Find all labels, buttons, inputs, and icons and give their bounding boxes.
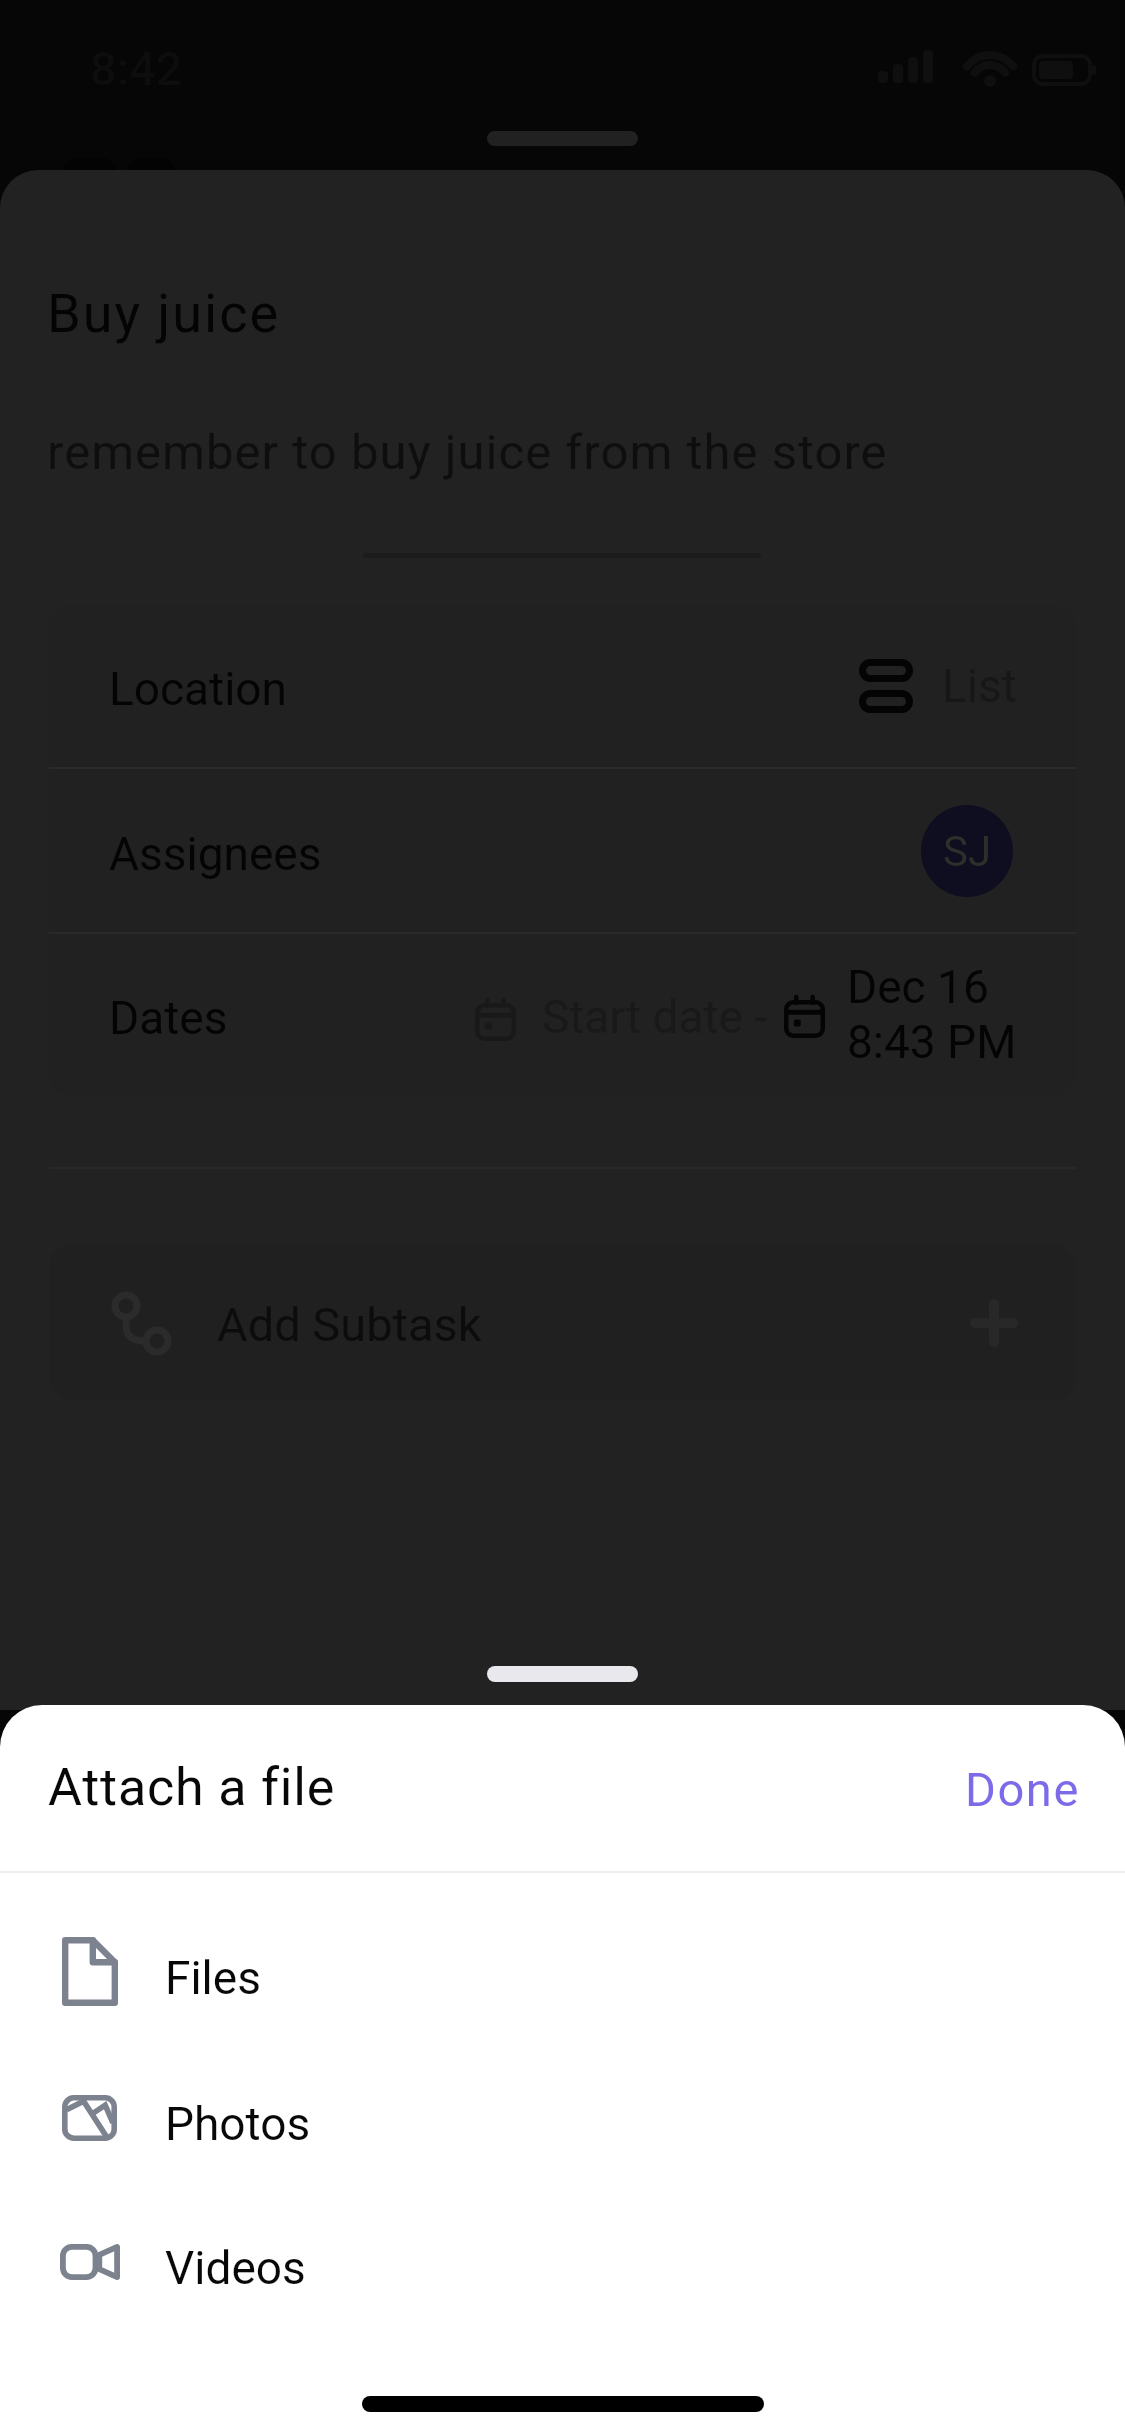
button[interactable]: Attach files [0,1917,1125,2027]
staticText: Files [165,1951,261,2005]
button[interactable]: Attach videos [0,2207,1125,2317]
staticText: Done [965,1762,1080,1817]
staticText: Dates [109,991,228,1045]
staticText: remember to buy juice from the store [47,424,888,481]
button[interactable]: Attach photos [0,2063,1125,2173]
staticText: Assignees [109,827,322,881]
staticText: Videos [165,2241,306,2295]
staticText: Add Subtask [217,1297,482,1352]
other: Attach videos [60,2227,120,2297]
button[interactable]: Done [965,1762,1080,1817]
button[interactable]: Assignees [49,769,1076,932]
staticText: 8:43 PM [847,1015,1017,1069]
other: Attach photos [60,2083,120,2153]
staticText: Location [109,662,287,716]
staticText: Attach a file [48,1757,336,1818]
staticText: Buy juice [47,282,281,345]
staticText: List [942,659,1017,713]
staticText: Dec 16 [847,960,989,1014]
staticText: Photos [165,2097,311,2151]
button[interactable]: Location [49,605,1076,767]
other: Attach files [60,1937,120,2007]
staticText: SJ [943,827,992,876]
button[interactable]: Dates [49,934,1076,1095]
